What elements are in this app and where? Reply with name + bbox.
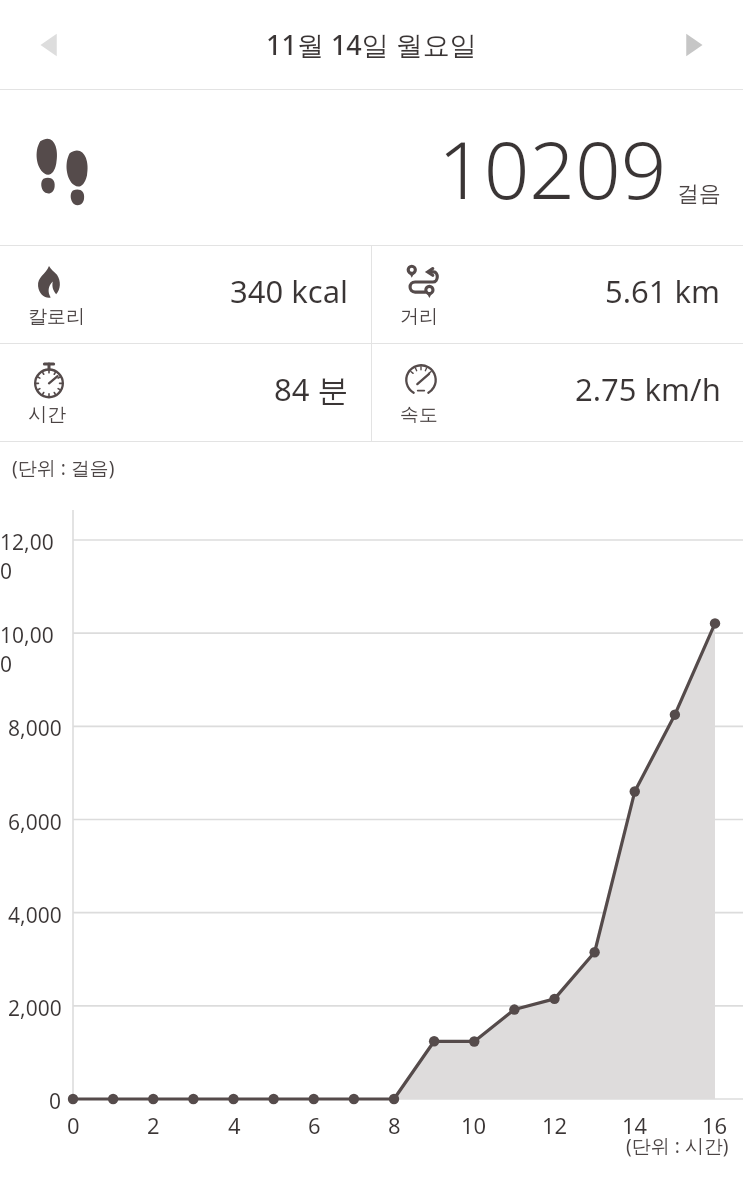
button[interactable]: 속도: [372, 344, 743, 441]
staticText: 5.61 km: [605, 270, 721, 312]
staticText: (단위 : 시간): [626, 1133, 729, 1159]
staticText: 시간: [28, 403, 66, 427]
staticText: 0: [67, 1110, 80, 1140]
staticText: 8,000: [8, 714, 62, 743]
staticText: 11월 14일 월요일: [266, 26, 477, 63]
staticText: 0: [49, 1087, 62, 1116]
staticText: 2,000: [8, 994, 62, 1023]
button[interactable]: 칼로리: [0, 246, 371, 343]
staticText: (단위 : 걸음): [12, 455, 115, 481]
staticText: 2: [147, 1110, 160, 1140]
staticText: 4,000: [8, 901, 62, 930]
button[interactable]: 시간: [0, 344, 371, 441]
staticText: 84 분: [274, 368, 349, 410]
staticText: 12,000: [0, 528, 62, 586]
staticText: 6: [308, 1110, 321, 1140]
staticText: 12: [542, 1110, 568, 1140]
staticText: 4: [228, 1110, 241, 1140]
button[interactable]: 10209: [0, 90, 743, 245]
staticText: 8: [388, 1110, 401, 1140]
staticText: 16: [702, 1110, 728, 1140]
button[interactable]: Previous day: [20, 15, 80, 75]
staticText: 거리: [400, 305, 438, 329]
button[interactable]: Next day: [663, 15, 723, 75]
staticText: 10,000: [0, 621, 62, 679]
staticText: 10: [461, 1110, 487, 1140]
staticText: 6,000: [8, 808, 62, 837]
staticText: 칼로리: [28, 305, 85, 329]
staticText: 14: [622, 1110, 648, 1140]
staticText: 340 kcal: [230, 270, 349, 312]
staticText: 속도: [400, 403, 438, 427]
staticText: 10209: [438, 113, 667, 222]
staticText: 걸음: [677, 180, 721, 208]
staticText: 2.75 km/h: [575, 368, 721, 410]
button[interactable]: 거리: [372, 246, 743, 343]
